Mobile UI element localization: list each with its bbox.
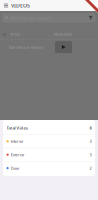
- staticText: Exterior: [11, 152, 25, 157]
- staticText: PREVIEW: [54, 32, 72, 37]
- staticText: Search by title, category: [10, 15, 51, 21]
- staticText: 2: [89, 165, 91, 171]
- staticText: VIDEOS: [11, 2, 30, 9]
- staticText: Door: [11, 165, 20, 171]
- staticText: 3: [89, 152, 91, 157]
- staticText: 3: [89, 139, 91, 144]
- button[interactable]: Interior: [3, 134, 95, 148]
- staticText: Start the car (teaser): [9, 44, 44, 50]
- button[interactable]: Door: [3, 161, 95, 175]
- staticText: Interior: [11, 139, 24, 144]
- button[interactable]: Exterior: [3, 148, 95, 161]
- staticText: TITLE: [10, 32, 20, 37]
- button[interactable]: Filter: [89, 16, 95, 20]
- button[interactable]: Menu: [0, 3, 11, 8]
- staticText: Total Video: [6, 125, 27, 130]
- staticText: 8: [89, 125, 91, 130]
